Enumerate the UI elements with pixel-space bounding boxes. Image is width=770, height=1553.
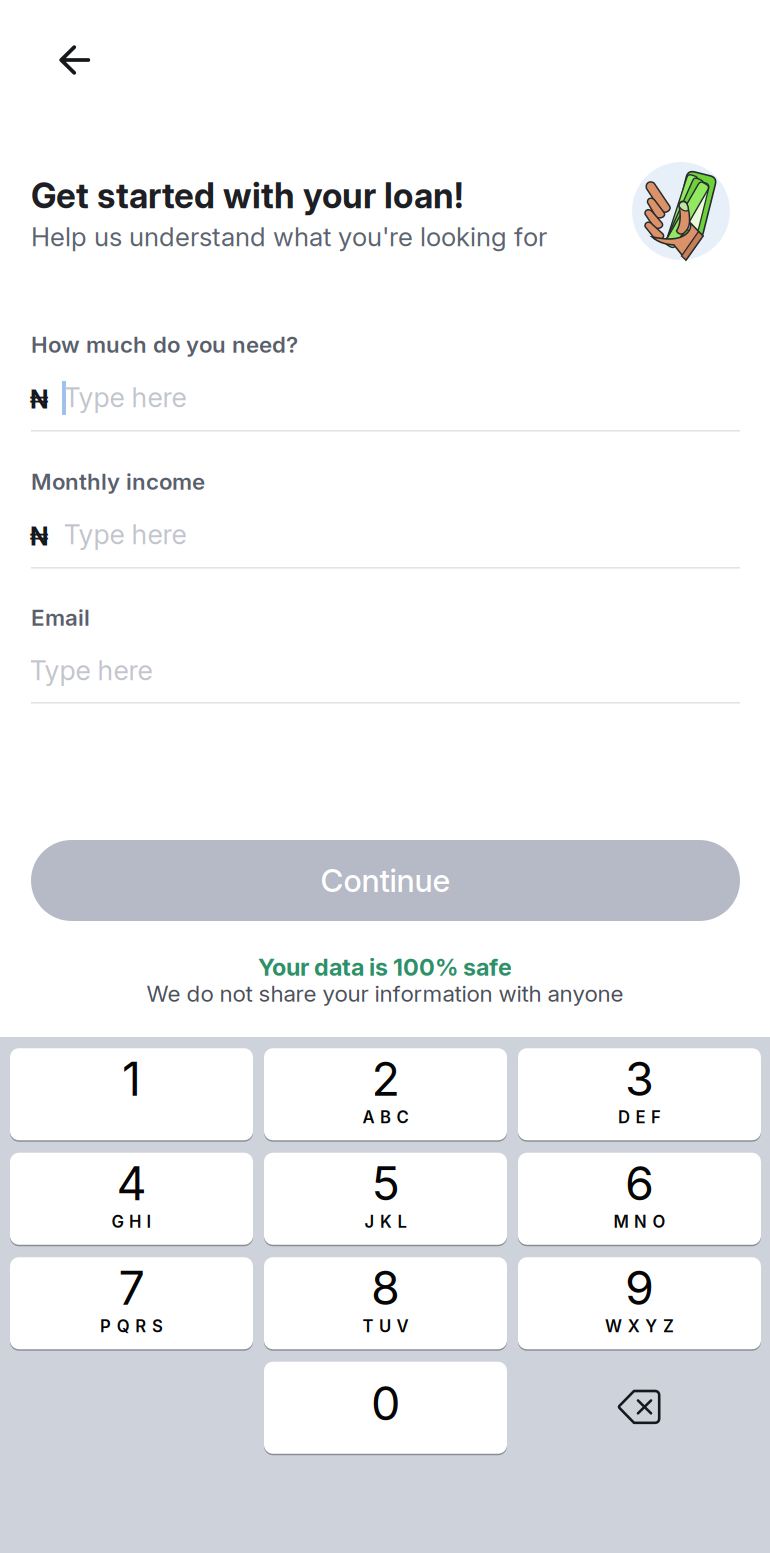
staticText: 1 <box>122 1050 141 1107</box>
staticText: I <box>147 1212 152 1232</box>
staticText: F <box>651 1107 661 1127</box>
button[interactable]: 2 <box>264 1047 507 1141</box>
staticText: 7 <box>118 1259 144 1316</box>
staticText: N <box>634 1212 647 1232</box>
button[interactable]: 5 <box>264 1152 507 1245</box>
button[interactable]: 4 <box>10 1152 253 1245</box>
staticText: J <box>364 1212 374 1232</box>
staticText: V <box>397 1316 409 1336</box>
staticText: 8 <box>371 1259 400 1316</box>
button[interactable]: Back <box>59 45 90 75</box>
button[interactable]: 6 <box>518 1152 761 1245</box>
button[interactable]: 8 <box>264 1256 507 1350</box>
staticText: Type here <box>63 381 186 414</box>
staticText: U <box>379 1316 391 1336</box>
staticText: ₦ <box>30 521 49 551</box>
button[interactable]: 9 <box>518 1256 761 1350</box>
button[interactable]: 1 <box>10 1047 253 1141</box>
staticText: K <box>380 1212 392 1232</box>
staticText: X <box>628 1316 640 1336</box>
button[interactable]: 0 <box>264 1361 507 1454</box>
staticText: Type here <box>63 518 186 551</box>
staticText: 3 <box>625 1050 654 1107</box>
staticText: W <box>605 1316 622 1336</box>
staticText: Monthly income <box>31 468 205 495</box>
staticText: We do not share your information with an… <box>146 980 623 1007</box>
staticText: E <box>635 1107 645 1127</box>
staticText: Your data is 100% safe <box>258 953 512 981</box>
staticText: 4 <box>116 1155 146 1211</box>
staticText: G <box>111 1212 123 1232</box>
staticText: Q <box>117 1316 130 1336</box>
staticText: S <box>152 1316 163 1336</box>
button[interactable]: Continue <box>31 840 740 921</box>
staticText: Y <box>645 1316 657 1336</box>
staticText: H <box>129 1212 141 1232</box>
staticText: 2 <box>371 1050 399 1107</box>
staticText: Type here <box>29 654 152 687</box>
staticText: Email <box>31 604 90 631</box>
staticText: O <box>653 1212 666 1232</box>
staticText: B <box>380 1107 391 1127</box>
button[interactable]: 7 <box>10 1256 253 1350</box>
staticText: C <box>397 1107 409 1127</box>
staticText: ₦ <box>30 384 49 414</box>
staticText: 0 <box>371 1375 400 1431</box>
staticText: 6 <box>625 1155 654 1211</box>
staticText: M <box>613 1212 628 1232</box>
staticText: Help us understand what you're looking f… <box>31 221 547 252</box>
button[interactable]: Delete <box>618 1389 661 1424</box>
staticText: 5 <box>371 1155 399 1211</box>
staticText: R <box>135 1316 146 1336</box>
staticText: Continue <box>320 861 450 899</box>
staticText: T <box>362 1316 373 1336</box>
staticText: How much do you need? <box>31 331 298 358</box>
staticText: P <box>100 1316 111 1336</box>
staticText: Z <box>663 1316 674 1336</box>
staticText: Get started with your loan! <box>31 175 464 217</box>
staticText: A <box>362 1107 374 1127</box>
staticText: 9 <box>625 1259 654 1316</box>
button[interactable]: 3 <box>518 1047 761 1141</box>
staticText: L <box>398 1212 407 1232</box>
staticText: D <box>618 1107 630 1127</box>
